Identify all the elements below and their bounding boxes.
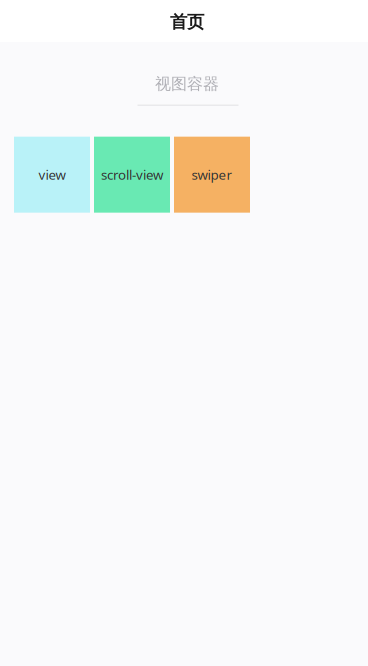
button[interactable]: scroll-view [94,137,170,213]
button[interactable]: swiper [174,137,250,213]
button[interactable]: view [14,137,90,213]
staticText: 视图容器 [155,74,219,94]
staticText: scroll-view [101,166,163,183]
staticText: view [38,166,65,183]
staticText: swiper [191,166,232,183]
staticText: 首页 [170,11,204,33]
